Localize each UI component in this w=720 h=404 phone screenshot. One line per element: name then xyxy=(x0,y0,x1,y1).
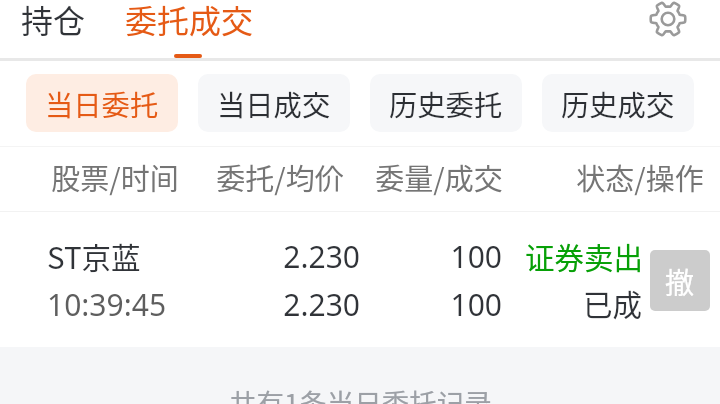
button[interactable]: 撤 xyxy=(650,250,710,311)
staticText: 委托成交 xyxy=(125,0,254,42)
staticText: 2.230 xyxy=(100,236,360,277)
staticText: 10:39:45 xyxy=(47,284,167,325)
staticText: 共有1条当日委托记录 xyxy=(229,382,492,404)
staticText: 股票/时间 xyxy=(51,156,179,198)
button[interactable]: 持仓 xyxy=(10,0,96,58)
staticText: 委量/成交 xyxy=(375,156,503,198)
staticText: 历史成交 xyxy=(561,83,675,124)
button[interactable]: 历史委托 xyxy=(370,74,522,132)
staticText: 状态/操作 xyxy=(576,156,704,198)
staticText: 委托/均价 xyxy=(216,156,344,198)
button[interactable] xyxy=(0,212,720,346)
staticText: ST京蓝 xyxy=(47,235,141,278)
button[interactable]: 历史成交 xyxy=(542,74,694,132)
button[interactable]: Settings xyxy=(642,0,694,39)
staticText: 当日成交 xyxy=(217,83,331,124)
button[interactable]: 委托成交 xyxy=(115,0,263,58)
staticText: 证券卖出 xyxy=(383,235,643,278)
staticText: 撤 xyxy=(665,260,695,302)
staticText: 历史委托 xyxy=(389,83,503,124)
staticText: 持仓 xyxy=(21,0,86,42)
staticText: 已成 xyxy=(382,282,642,325)
button[interactable]: 当日委托 xyxy=(26,74,178,132)
button[interactable]: 当日成交 xyxy=(198,74,350,132)
staticText: 当日委托 xyxy=(45,83,159,124)
staticText: 100 xyxy=(242,236,502,277)
staticText: 2.230 xyxy=(100,284,360,325)
staticText: 100 xyxy=(242,284,502,325)
